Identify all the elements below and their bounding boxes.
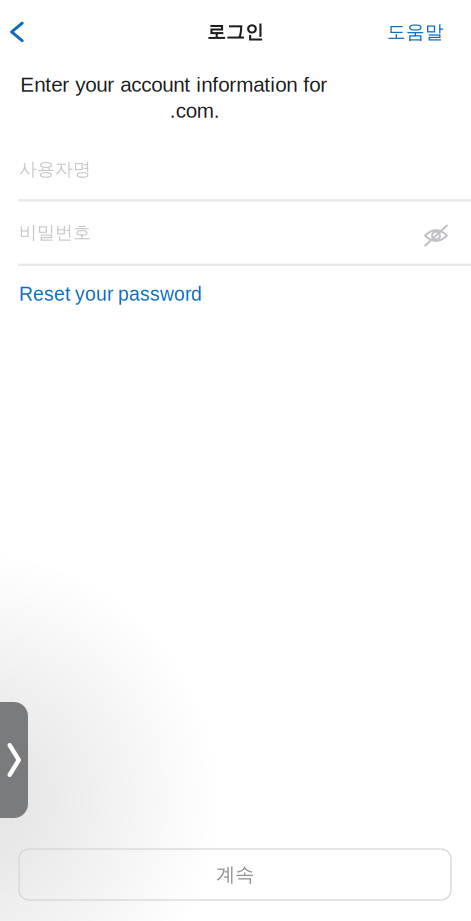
button[interactable]: Show password xyxy=(414,214,458,258)
button[interactable]: Open drawer xyxy=(0,702,42,818)
button[interactable]: Back xyxy=(0,10,34,54)
staticText: Reset your password xyxy=(19,283,202,305)
staticText: 비밀번호 xyxy=(19,221,91,244)
button[interactable]: 계속 xyxy=(19,849,451,900)
button[interactable]: Reset your password xyxy=(0,274,202,314)
button[interactable]: 도움말 xyxy=(387,10,471,54)
staticText: 계속 xyxy=(216,862,254,887)
staticText: 도움말 xyxy=(387,20,444,44)
staticText: 로그인 xyxy=(207,20,264,44)
staticText: Enter your account information for .com. xyxy=(20,73,327,122)
staticText: 사용자명 xyxy=(19,158,91,180)
